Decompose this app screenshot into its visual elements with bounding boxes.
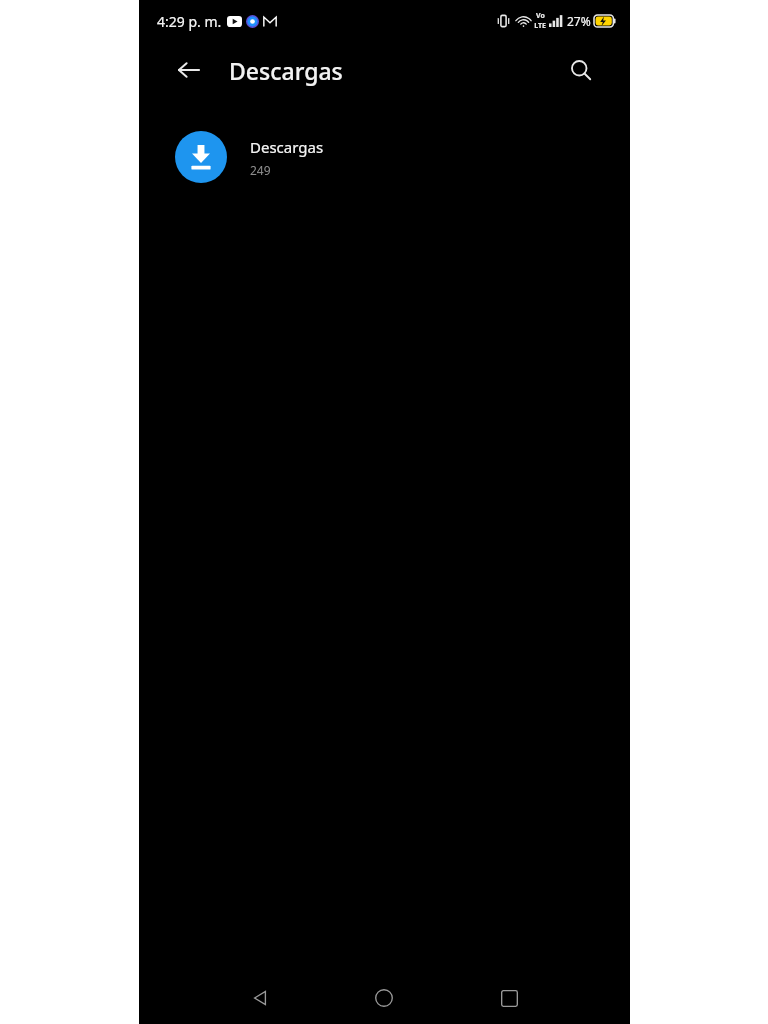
button[interactable]: Home bbox=[361, 975, 407, 1021]
staticText: 27% bbox=[567, 13, 591, 29]
staticText: Descargas bbox=[229, 55, 343, 86]
button[interactable]: Search bbox=[559, 48, 603, 92]
staticText: Descargas bbox=[250, 137, 324, 157]
button[interactable]: Back bbox=[167, 48, 211, 92]
button[interactable]: Descargas bbox=[139, 120, 630, 194]
button[interactable]: Recent apps bbox=[486, 975, 532, 1021]
staticText: Vo bbox=[536, 11, 545, 21]
staticText: LTE bbox=[534, 21, 546, 31]
button[interactable]: Back bbox=[237, 975, 283, 1021]
staticText: 4:29 p. m. bbox=[157, 12, 222, 31]
staticText: 249 bbox=[250, 162, 271, 178]
